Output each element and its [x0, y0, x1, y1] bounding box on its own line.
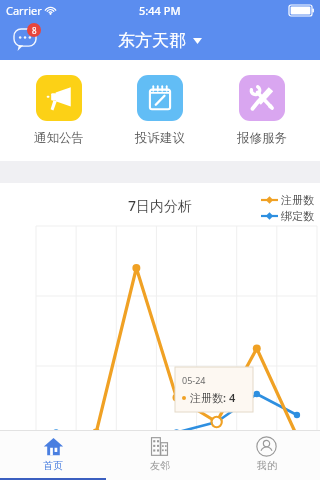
staticText: 友邻 — [150, 459, 170, 472]
staticText: 8 — [32, 25, 37, 36]
staticText: 7日内分析 — [128, 196, 193, 215]
staticText: Carrier — [6, 3, 42, 18]
button[interactable]: 通知公告 — [16, 75, 102, 146]
button[interactable]: 报修服务 — [219, 75, 305, 146]
staticText: 注册数 — [281, 193, 314, 207]
button[interactable]: 投诉建议 — [117, 75, 203, 146]
button[interactable]: 首页 — [0, 431, 106, 477]
staticText: 绑定数 — [281, 209, 314, 223]
staticText: 我的 — [257, 459, 277, 472]
staticText: 首页 — [43, 459, 63, 472]
staticText: 东方天郡 — [118, 30, 186, 51]
staticText: 5:44 PM — [139, 3, 181, 18]
staticText: 05-24 — [182, 374, 206, 386]
staticText: 投诉建议 — [135, 130, 185, 146]
button[interactable]: 友邻 — [106, 431, 213, 477]
staticText: 报修服务 — [237, 130, 287, 146]
button[interactable]: 东方天郡 — [118, 30, 202, 51]
staticText: 通知公告 — [34, 130, 84, 146]
staticText: 注册数: 4 — [190, 390, 236, 405]
button[interactable]: 我的 — [213, 431, 320, 477]
button[interactable]: Messages — [8, 23, 42, 57]
